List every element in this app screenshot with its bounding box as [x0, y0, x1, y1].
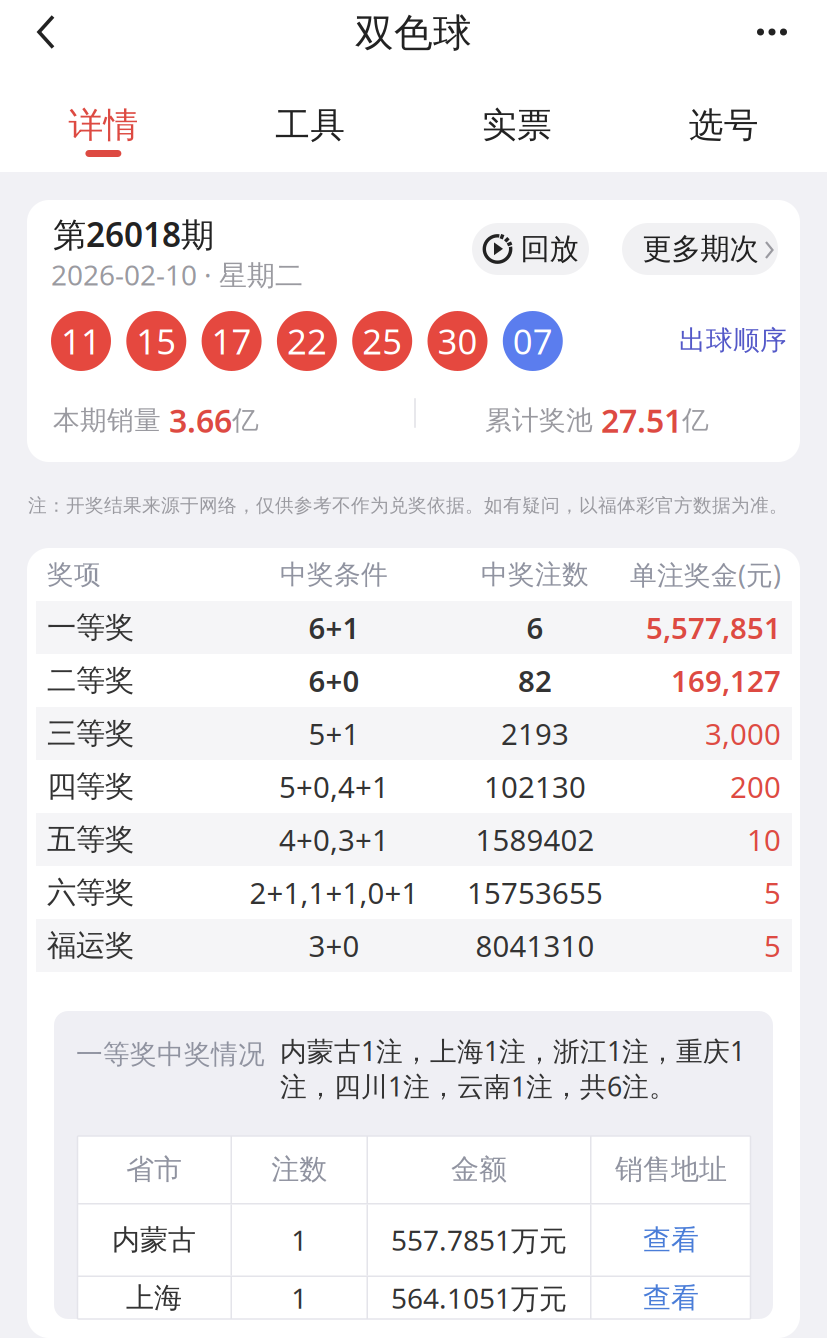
staticText: 实票	[482, 104, 552, 147]
staticText: 注：开奖结果来源于网络，仅供参考不作为兑奖依据。如有疑问，以福体彩官方数据为准。	[28, 494, 788, 517]
staticText: 双色球	[355, 9, 472, 57]
staticText: 07	[513, 318, 553, 364]
staticText: 15	[136, 318, 176, 364]
staticText: 3.66	[169, 399, 232, 441]
staticText: 3,000	[705, 714, 781, 753]
staticText: 工具	[275, 104, 345, 147]
button[interactable]: 查看	[591, 1204, 750, 1275]
staticText: 中奖条件	[280, 558, 388, 591]
staticText: 六等奖	[47, 874, 134, 910]
staticText: 内蒙古	[112, 1223, 196, 1257]
staticText: 四等奖	[47, 768, 134, 804]
staticText: 销售地址	[615, 1152, 727, 1187]
staticText: 5	[764, 873, 781, 912]
staticText: 1589402	[475, 820, 594, 859]
button[interactable]: 更多期次	[622, 223, 778, 275]
staticText: 一等奖中奖情况	[76, 1038, 265, 1071]
staticText: 详情	[68, 104, 138, 147]
staticText: 25	[362, 318, 402, 364]
staticText: 五等奖	[47, 821, 134, 857]
staticText: 5+0,4+1	[279, 767, 389, 806]
staticText: 中奖注数	[481, 558, 589, 591]
staticText: 2026-02-10 · 星期二	[51, 256, 303, 293]
staticText: 金额	[451, 1152, 507, 1187]
staticText: 二等奖	[47, 662, 134, 698]
staticText: 11	[61, 318, 101, 364]
staticText: 注数	[271, 1152, 327, 1187]
staticText: 82	[518, 661, 552, 700]
button[interactable]: 选号	[620, 78, 827, 172]
staticText: 200	[730, 767, 781, 806]
staticText: 8041310	[475, 926, 594, 965]
staticText: 6+1	[308, 608, 359, 647]
staticText: 1	[291, 1221, 307, 1259]
staticText: 6+0	[308, 661, 359, 700]
staticText: 30	[437, 318, 477, 364]
staticText: 第26018期	[53, 212, 214, 256]
staticText: 累计奖池	[485, 404, 601, 437]
staticText: 2193	[501, 714, 569, 753]
staticText: 5	[764, 926, 781, 965]
button[interactable]: 查看	[591, 1277, 750, 1319]
staticText: 省市	[126, 1152, 182, 1187]
staticText: 内蒙古1注，上海1注，浙江1注，重庆1注，四川1注，云南1注，共6注。	[280, 1033, 745, 1104]
staticText: 查看	[643, 1281, 699, 1315]
staticText: 2+1,1+1,0+1	[249, 873, 418, 912]
staticText: 17	[212, 318, 252, 364]
staticText: 单注奖金(元)	[630, 557, 781, 592]
staticText: 查看	[643, 1223, 699, 1257]
staticText: 22	[287, 318, 327, 364]
staticText: 557.7851万元	[391, 1221, 567, 1259]
staticText: 5+1	[308, 714, 359, 753]
button[interactable]: 出球顺序	[679, 324, 787, 357]
staticText: 三等奖	[47, 715, 134, 751]
staticText: 一等奖	[47, 609, 134, 645]
staticText: 上海	[126, 1281, 182, 1315]
button[interactable]: 回放	[472, 223, 589, 275]
staticText: 本期销量	[53, 404, 169, 437]
staticText: 奖项	[47, 558, 101, 591]
button[interactable]: 返回	[4, 0, 88, 65]
staticText: 回放	[520, 231, 578, 267]
staticText: 福运奖	[47, 927, 134, 963]
button[interactable]: 工具	[207, 78, 414, 172]
staticText: 564.1051万元	[391, 1279, 567, 1317]
staticText: 出球顺序	[679, 324, 787, 357]
button[interactable]: 实票	[413, 78, 620, 172]
staticText: 亿	[232, 404, 259, 437]
button[interactable]: 更多	[726, 0, 818, 65]
staticText: 169,127	[671, 661, 781, 700]
staticText: 3+0	[308, 926, 359, 965]
staticText: 27.51	[601, 399, 682, 441]
staticText: 1	[291, 1279, 307, 1317]
staticText: 10	[747, 820, 781, 859]
staticText: 选号	[689, 104, 759, 147]
staticText: 102130	[484, 767, 586, 806]
button[interactable]: 详情	[0, 78, 207, 172]
staticText: 4+0,3+1	[279, 820, 389, 859]
staticText: 更多期次	[642, 231, 758, 267]
staticText: 6	[526, 608, 543, 647]
staticText: 亿	[682, 404, 709, 437]
staticText: 5,577,851	[646, 608, 781, 647]
staticText: 15753655	[467, 873, 603, 912]
